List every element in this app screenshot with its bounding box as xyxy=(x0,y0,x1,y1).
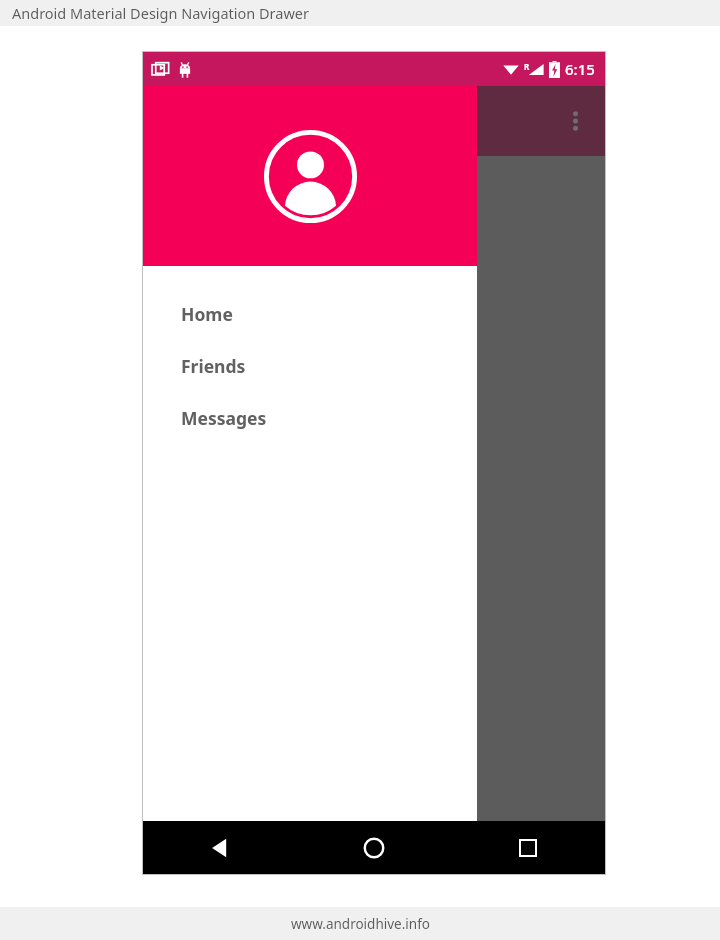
button[interactable]: Back xyxy=(143,821,297,874)
button[interactable]: Messages xyxy=(143,392,477,444)
button[interactable]: Recent apps xyxy=(451,821,605,874)
staticText: Messages xyxy=(181,406,267,430)
staticText: Android Material Design Navigation Drawe… xyxy=(12,3,309,23)
staticText: Home xyxy=(181,302,233,326)
staticText: 6:15 xyxy=(565,59,595,79)
button[interactable]: Friends xyxy=(143,340,477,392)
button[interactable]: Profile xyxy=(143,86,477,266)
staticText: R xyxy=(524,61,530,72)
staticText: www.androidhive.info xyxy=(291,915,430,933)
button[interactable]: Home xyxy=(143,288,477,340)
staticText: Friends xyxy=(181,354,246,378)
button[interactable]: More options xyxy=(559,105,591,137)
button[interactable]: Home xyxy=(297,821,451,874)
